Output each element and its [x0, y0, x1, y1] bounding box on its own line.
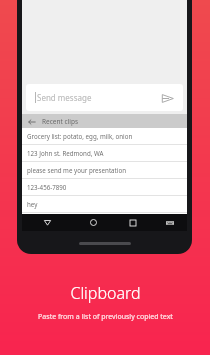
staticText: Send message	[37, 92, 92, 103]
staticText: Clipboard	[70, 282, 141, 304]
staticText: 123 John st. Redmond, WA	[27, 149, 104, 157]
button[interactable]: please send me your presentation	[22, 162, 187, 178]
staticText: hey	[27, 200, 38, 208]
button[interactable]: Back	[22, 214, 73, 231]
button[interactable]: Grocery list: potato, egg, milk, onion	[22, 128, 187, 144]
button[interactable]: Recents	[113, 214, 153, 231]
staticText: Recent clips	[42, 117, 79, 126]
button[interactable]: 123-456-7890	[22, 179, 187, 195]
staticText: Paste from a list of previously copied t…	[38, 312, 173, 322]
other: Back	[27, 117, 36, 126]
button[interactable]: 123 John st. Redmond, WA	[22, 145, 187, 161]
button[interactable]: Send	[159, 90, 175, 106]
button[interactable]: hey	[22, 196, 187, 212]
staticText: Grocery list: potato, egg, milk, onion	[27, 132, 133, 140]
button[interactable]: Home	[73, 214, 113, 231]
staticText: please send me your presentation	[27, 166, 126, 174]
button[interactable]: Back	[22, 114, 187, 128]
button[interactable]: Send message	[26, 84, 183, 111]
staticText: 123-456-7890	[27, 183, 67, 191]
button[interactable]: Keyboard	[153, 214, 187, 231]
